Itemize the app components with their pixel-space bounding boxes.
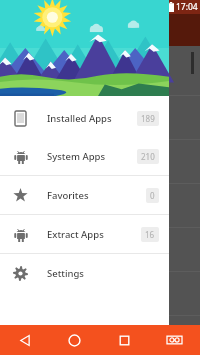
button[interactable]: Installed Apps	[0, 99, 169, 137]
button[interactable]: Favorites	[0, 176, 169, 214]
staticText: 17:04	[176, 1, 198, 13]
staticText: Settings	[47, 267, 84, 280]
staticText: Favorites	[47, 189, 89, 202]
staticText: 189	[141, 113, 155, 124]
button[interactable]: Recents	[109, 325, 139, 355]
staticText: 16	[145, 229, 155, 240]
staticText: Installed Apps	[47, 112, 112, 125]
staticText: System Apps	[47, 150, 106, 163]
button[interactable]: Back	[10, 325, 40, 355]
button[interactable]: Screenshot	[159, 325, 189, 355]
staticText: Extract Apps	[47, 228, 104, 241]
button[interactable]: Settings	[0, 254, 169, 292]
staticText: 210	[141, 151, 155, 162]
button[interactable]: Home	[59, 325, 89, 355]
button[interactable]: System Apps	[0, 137, 169, 175]
staticText: 0	[150, 190, 155, 201]
button[interactable]: Extract Apps	[0, 215, 169, 253]
